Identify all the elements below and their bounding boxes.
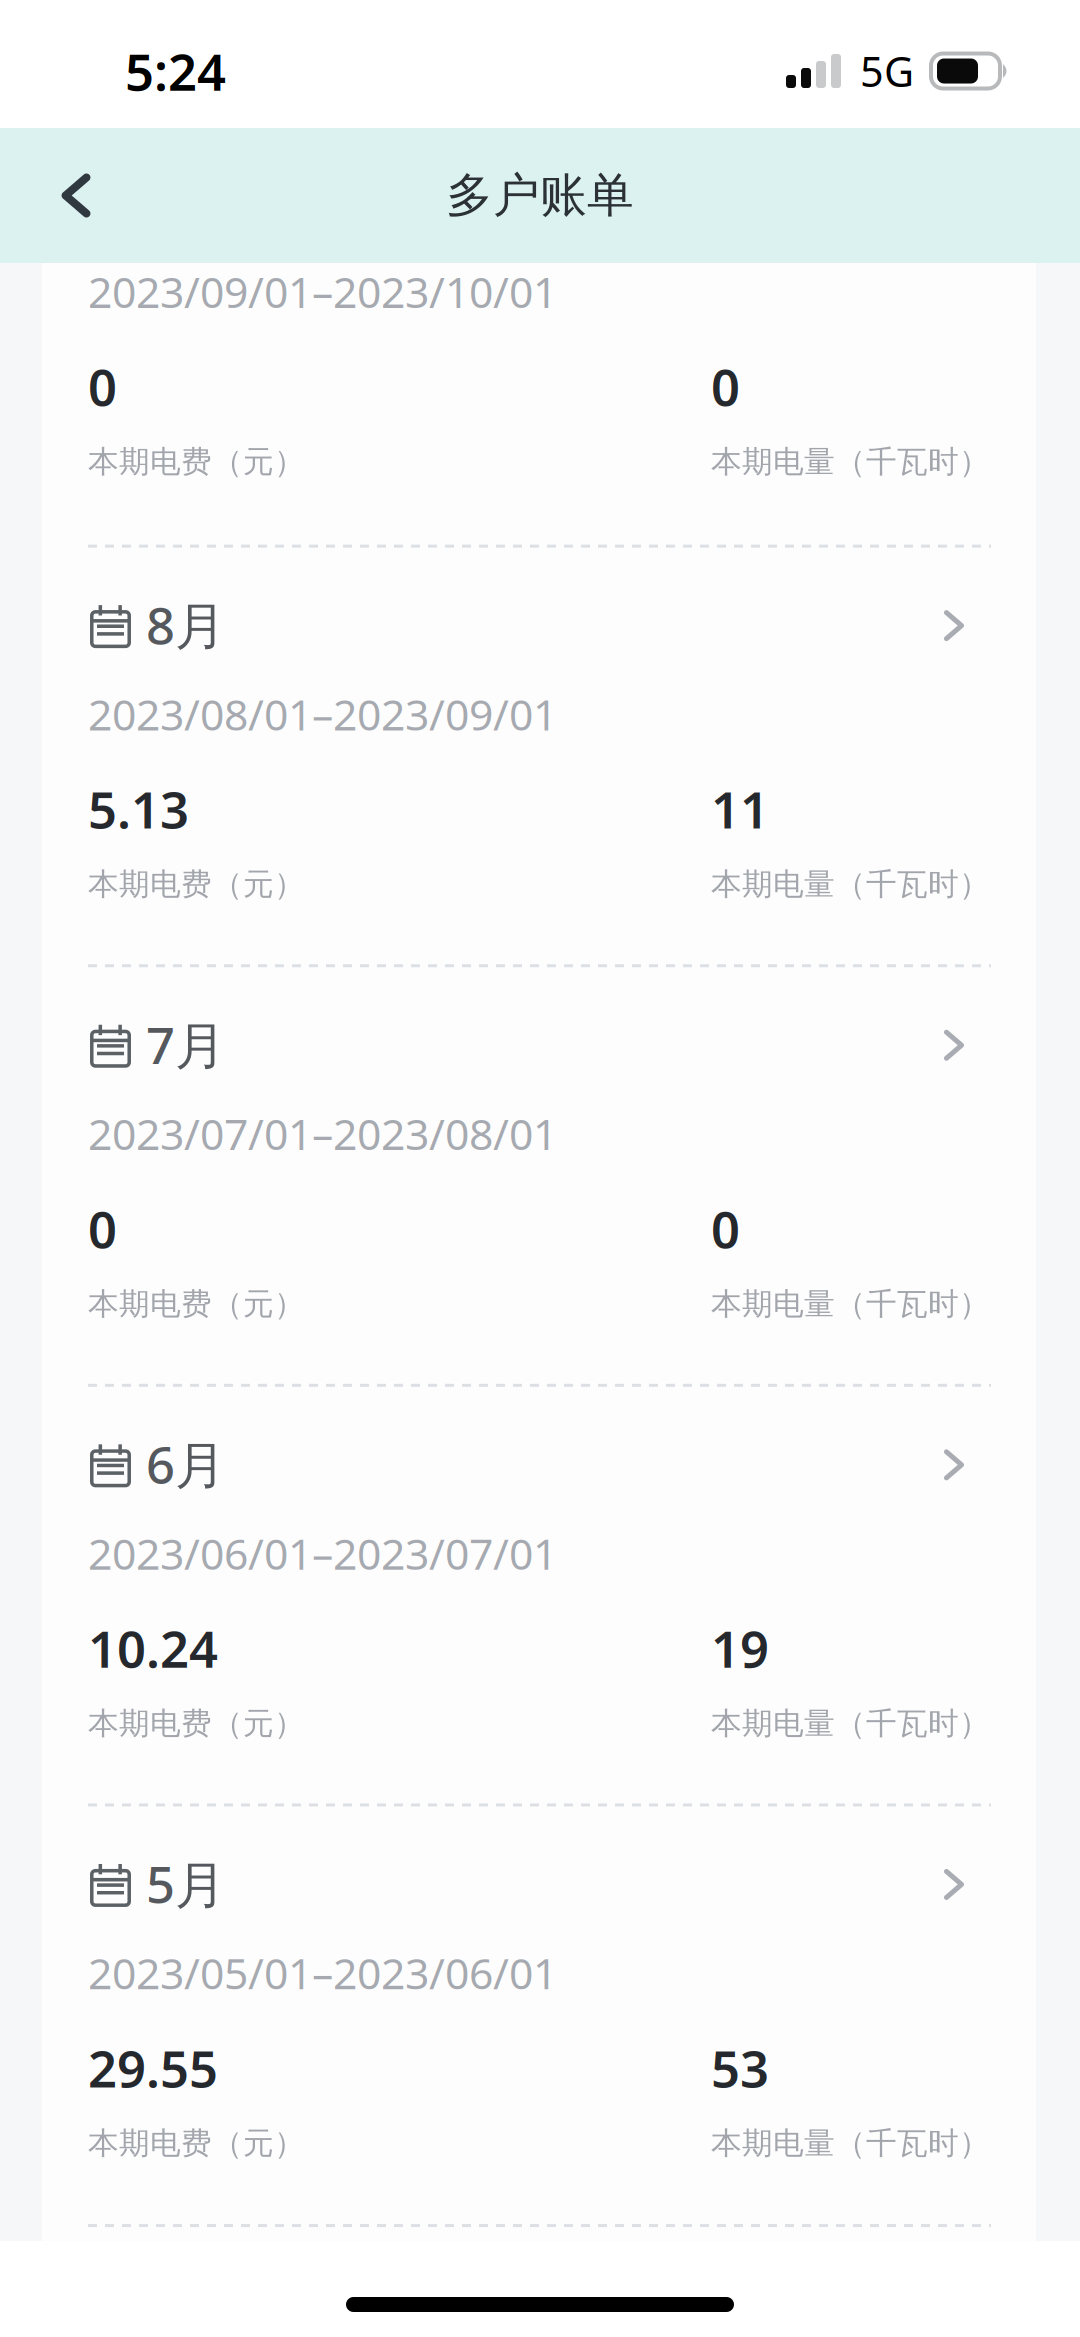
staticText: 本期电费（元） xyxy=(88,443,305,481)
staticText: 本期电量（千瓦时） xyxy=(711,1285,990,1323)
staticText: 0 xyxy=(88,1195,117,1262)
button[interactable]: 5月 xyxy=(88,1863,1036,2162)
staticText: 8月 xyxy=(146,591,226,658)
staticText: 5.13 xyxy=(88,775,189,843)
staticText: 本期电费（元） xyxy=(88,1705,305,1742)
staticText: 2023/05/01–2023/06/01 xyxy=(88,1944,557,2001)
button[interactable]: 7月 xyxy=(88,1024,1036,1323)
button[interactable]: 8月 xyxy=(88,605,1036,903)
staticText: 多户账单 xyxy=(446,167,634,224)
staticText: 2023/07/01–2023/08/01 xyxy=(88,1105,557,1162)
staticText: 10.24 xyxy=(88,1614,218,1682)
staticText: 本期电费（元） xyxy=(88,1285,305,1323)
staticText: 2023/09/01–2023/10/01 xyxy=(88,263,557,320)
button[interactable]: 6月 xyxy=(88,1444,1036,1742)
staticText: 本期电量（千瓦时） xyxy=(711,866,990,903)
staticText: 5月 xyxy=(146,1850,226,1917)
staticText: 0 xyxy=(711,353,740,420)
staticText: 2023/08/01–2023/09/01 xyxy=(88,686,557,742)
button[interactable]: Back xyxy=(21,140,131,250)
staticText: 2023/06/01–2023/07/01 xyxy=(88,1525,557,1581)
staticText: 6月 xyxy=(146,1430,226,1497)
staticText: 19 xyxy=(711,1614,769,1682)
staticText: 0 xyxy=(88,353,117,420)
staticText: 7月 xyxy=(146,1011,226,1078)
staticText: 本期电量（千瓦时） xyxy=(711,443,990,481)
staticText: 本期电费（元） xyxy=(88,2124,305,2162)
staticText: 29.55 xyxy=(88,2034,218,2101)
staticText: 本期电量（千瓦时） xyxy=(711,1705,990,1742)
staticText: 5G xyxy=(860,44,914,98)
staticText: 53 xyxy=(711,2034,769,2101)
staticText: 0 xyxy=(711,1195,740,1262)
staticText: 5:24 xyxy=(125,37,226,105)
staticText: 本期电量（千瓦时） xyxy=(711,2124,990,2162)
staticText: 本期电费（元） xyxy=(88,866,305,903)
staticText: 11 xyxy=(711,775,769,843)
